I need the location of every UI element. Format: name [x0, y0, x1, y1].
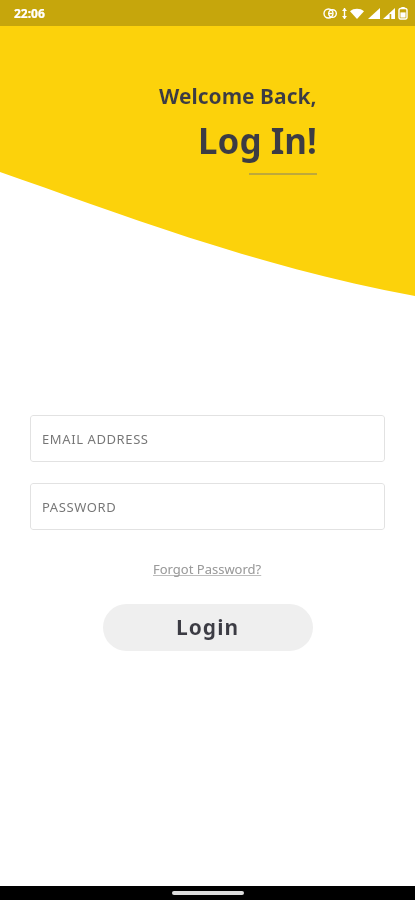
- staticText: Login: [176, 613, 240, 642]
- button[interactable]: PASSWORD: [30, 483, 385, 530]
- staticText: Forgot Password?: [153, 560, 262, 578]
- staticText: 22:06: [14, 5, 45, 21]
- button[interactable]: Login: [103, 604, 313, 651]
- staticText: PASSWORD: [42, 498, 117, 516]
- staticText: Log In!: [198, 117, 317, 165]
- button[interactable]: EMAIL ADDRESS: [30, 415, 385, 462]
- button[interactable]: Forgot Password?: [147, 558, 268, 580]
- staticText: EMAIL ADDRESS: [42, 430, 149, 448]
- staticText: Welcome Back,: [159, 82, 317, 111]
